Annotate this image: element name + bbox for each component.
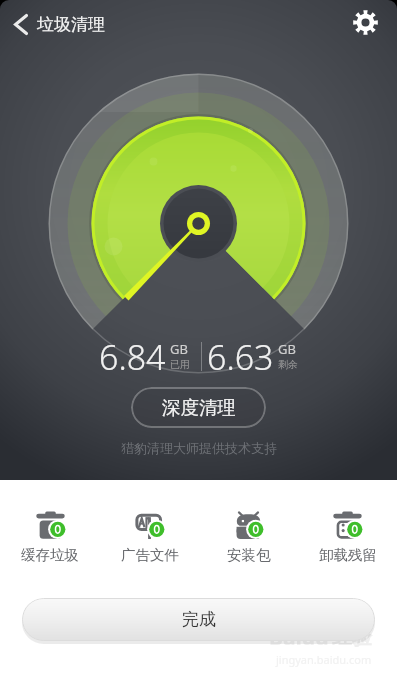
staticText: Baidu — [269, 623, 329, 652]
staticText: 猎豹清理大师提供技术支持 — [121, 440, 277, 456]
staticText: 广告文件 — [121, 546, 179, 564]
staticText: 6.84 — [99, 334, 166, 380]
staticText: GB — [278, 340, 296, 358]
staticText: 已用 — [170, 358, 190, 371]
button[interactable]: 深度清理 — [131, 387, 266, 428]
button[interactable]: 广告文件 — [100, 506, 199, 568]
button[interactable]: 安装包 — [199, 506, 298, 568]
button[interactable]: 缓存垃圾 — [0, 506, 100, 568]
staticText: 卸载残留 — [319, 546, 377, 564]
button[interactable]: 卸载残留 — [298, 506, 397, 568]
staticText: GB — [170, 340, 188, 358]
staticText: 深度清理 — [162, 396, 236, 419]
staticText: 缓存垃圾 — [21, 546, 79, 564]
staticText: 经验 — [332, 625, 372, 650]
button[interactable]: Settings — [347, 4, 383, 40]
button[interactable]: 垃圾清理 — [0, 6, 113, 43]
staticText: 安装包 — [227, 546, 271, 564]
staticText: 剩余 — [278, 358, 298, 371]
staticText: jingyan.baidu.com — [276, 652, 372, 667]
button[interactable]: 完成 — [22, 598, 375, 641]
staticText: 6.63 — [207, 334, 274, 380]
staticText: 垃圾清理 — [37, 14, 105, 35]
staticText: 完成 — [182, 609, 216, 630]
